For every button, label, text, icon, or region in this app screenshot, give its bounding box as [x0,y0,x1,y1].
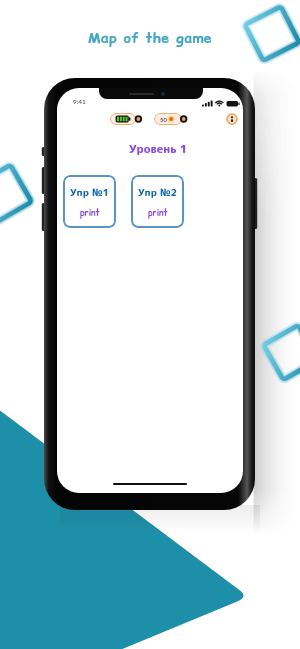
staticText: Упр №1 [70,185,110,199]
staticText: 50 [160,116,167,123]
staticText: print [80,207,100,219]
staticText: Упр №2 [138,185,178,199]
button[interactable]: Упр №1 [63,175,116,228]
button[interactable]: Упр №2 [131,175,184,228]
staticText: Map of the game [0,28,300,48]
staticText: print [148,207,168,219]
staticText: 9:41 [73,98,86,106]
staticText: Уровень 1 [129,141,188,157]
button[interactable]: Profile [226,113,238,125]
button[interactable]: Energy [110,113,143,125]
button[interactable]: Coins [154,113,188,125]
